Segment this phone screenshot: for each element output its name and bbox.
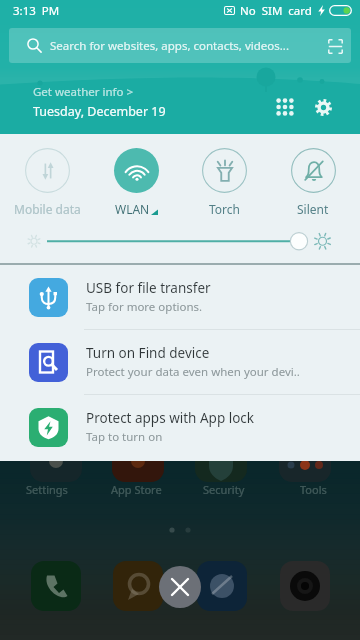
staticText: Mobile data xyxy=(14,201,81,217)
staticText: No SIM card xyxy=(240,3,312,19)
button[interactable]: Scan code xyxy=(323,34,347,58)
staticText: WLAN xyxy=(115,201,150,217)
button[interactable]: WLAN xyxy=(94,134,178,217)
button[interactable]: Close panel xyxy=(159,566,201,608)
staticText: Protect your data even when your devi.. xyxy=(86,364,300,380)
button[interactable]: Torch xyxy=(182,134,266,217)
staticText: Settings xyxy=(26,482,68,497)
staticText: Protect apps with App lock xyxy=(86,409,255,427)
staticText: App Store xyxy=(111,482,162,497)
button[interactable]: USB for file transfer xyxy=(0,265,360,329)
staticText: Silent xyxy=(297,201,329,217)
staticText: Security xyxy=(203,482,245,497)
button[interactable]: Silent xyxy=(271,134,355,217)
staticText: Tuesday, December 19 xyxy=(33,103,166,120)
button[interactable]: All apps xyxy=(270,92,299,121)
staticText: Search for websites, apps, contacts, vid… xyxy=(50,38,290,54)
staticText: Tap to turn on xyxy=(86,429,163,445)
button[interactable]: Settings xyxy=(308,92,339,123)
button[interactable]: Protect apps with App lock xyxy=(0,395,360,459)
staticText: 3:13 PM xyxy=(13,3,60,19)
button[interactable]: Search for websites, apps, contacts, vid… xyxy=(9,28,351,63)
button[interactable]: Mobile data xyxy=(5,134,89,217)
staticText: Torch xyxy=(209,201,240,217)
staticText: Turn on Find device xyxy=(86,344,210,362)
staticText: USB for file transfer xyxy=(86,279,211,297)
staticText: Get weather info > xyxy=(33,84,134,100)
button[interactable]: Turn on Find device xyxy=(0,330,360,394)
staticText: Tools xyxy=(300,482,327,497)
staticText: Tap for more options. xyxy=(86,299,203,315)
